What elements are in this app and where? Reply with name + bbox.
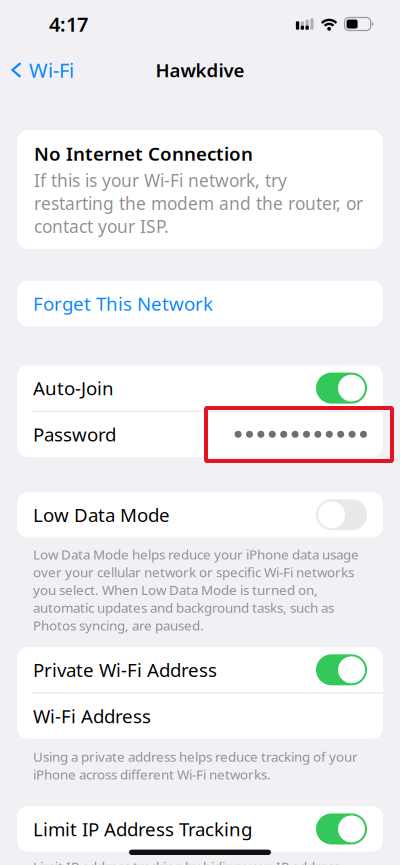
button[interactable]: Wi-Fi bbox=[0, 49, 86, 91]
button[interactable]: Limit IP Address Tracking bbox=[17, 806, 383, 852]
staticText: Private Wi-Fi Address bbox=[33, 657, 217, 682]
button[interactable]: Wi-Fi Address bbox=[17, 693, 383, 739]
staticText: If this is your Wi-Fi network, try resta… bbox=[34, 169, 363, 238]
button[interactable]: Low Data Mode bbox=[17, 492, 383, 537]
staticText: Using a private address helps reduce tra… bbox=[33, 748, 358, 783]
button[interactable]: Password bbox=[17, 411, 383, 457]
staticText: Forget This Network bbox=[33, 291, 213, 316]
staticText: Limit IP address tracking by hiding your… bbox=[33, 858, 340, 865]
button[interactable]: Private Wi-Fi Address bbox=[17, 647, 383, 693]
button[interactable]: Auto-Join bbox=[17, 365, 383, 411]
staticText: Wi-Fi Address bbox=[33, 704, 151, 728]
staticText: Password bbox=[33, 422, 116, 447]
staticText: Auto-Join bbox=[33, 376, 114, 400]
staticText: Low Data Mode helps reduce your iPhone d… bbox=[33, 545, 359, 634]
staticText: Low Data Mode bbox=[33, 502, 170, 527]
staticText: Hawkdive bbox=[155, 58, 244, 82]
staticText: No Internet Connection bbox=[34, 141, 253, 166]
button[interactable]: Forget This Network bbox=[17, 281, 383, 326]
staticText: Wi-Fi bbox=[29, 57, 74, 83]
staticText: Limit IP Address Tracking bbox=[33, 816, 252, 841]
staticText: 4:17 bbox=[49, 11, 88, 37]
